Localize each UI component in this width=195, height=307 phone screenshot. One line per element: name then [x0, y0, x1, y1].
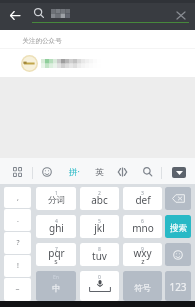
button[interactable]: 分词 — [36, 187, 76, 210]
staticText: z — [141, 257, 145, 266]
button[interactable]: Voice input — [80, 271, 119, 301]
button[interactable]: 符号 — [123, 271, 162, 301]
button[interactable] — [0, 49, 195, 77]
staticText: 英 — [95, 167, 104, 178]
staticText: ? — [16, 238, 20, 248]
staticText: 5 — [98, 218, 101, 225]
staticText: mno — [132, 221, 154, 235]
staticText: 拼· — [69, 166, 80, 178]
staticText: 0 — [98, 274, 101, 281]
staticText: 4 — [55, 218, 58, 225]
button[interactable]: 英 — [89, 160, 109, 184]
staticText: . — [17, 215, 19, 225]
button[interactable]: Keyboard layouts — [7, 160, 28, 184]
staticText: def — [135, 193, 151, 207]
staticText: 搜索 — [170, 223, 187, 234]
button[interactable]: ? — [4, 232, 31, 254]
button[interactable]: jkl — [80, 215, 119, 238]
staticText: pqr — [48, 246, 65, 260]
button[interactable]: mno — [123, 215, 162, 238]
staticText: abc — [91, 193, 108, 207]
staticText: 3 — [141, 190, 144, 197]
button[interactable]: 搜索 — [165, 215, 191, 238]
staticText: 符号 — [134, 283, 151, 294]
button[interactable]: ! — [4, 255, 31, 277]
button[interactable]: , — [4, 187, 31, 208]
button[interactable]: 中 — [36, 271, 76, 301]
button[interactable]: 拼· — [62, 160, 86, 184]
staticText: jkl — [94, 221, 105, 235]
staticText: ! — [17, 261, 19, 271]
staticText: 9 — [141, 246, 144, 253]
button[interactable]: Clear search — [172, 7, 189, 24]
staticText: En — [53, 274, 59, 281]
staticText: 1 — [55, 190, 58, 197]
staticText: tuv — [92, 249, 107, 263]
button[interactable]: Voice input — [112, 160, 132, 184]
button[interactable]: 123 — [165, 271, 191, 301]
staticText: wxy — [133, 246, 152, 260]
button[interactable]: Back — [4, 3, 26, 27]
button[interactable]: def — [123, 187, 162, 210]
staticText: 中 — [52, 283, 61, 294]
staticText: , — [17, 193, 19, 203]
button[interactable]: Search — [138, 160, 158, 184]
button[interactable]: pqr — [36, 243, 76, 266]
staticText: 6 — [141, 218, 144, 225]
staticText: 7 — [55, 246, 58, 253]
button[interactable]: . — [4, 209, 31, 231]
button[interactable]: tuv — [80, 243, 119, 266]
staticText: 2 — [98, 190, 101, 197]
button[interactable]: ghi — [36, 215, 76, 238]
staticText: 123 — [169, 280, 187, 294]
staticText: ghi — [49, 221, 64, 235]
button[interactable]: 关注的公众号 — [0, 30, 195, 48]
button[interactable]: Emoji — [36, 160, 57, 184]
button[interactable]: wxy — [123, 243, 162, 266]
staticText: 分词 — [48, 195, 65, 206]
staticText: s — [54, 257, 58, 266]
staticText: ~ — [15, 285, 20, 295]
button[interactable]: Backspace — [165, 187, 191, 210]
button[interactable]: Hide keyboard — [166, 160, 191, 184]
button[interactable]: abc — [80, 187, 119, 210]
button[interactable]: ~ — [4, 278, 31, 301]
staticText: 关注的公众号 — [22, 37, 62, 45]
button[interactable]: Emoji — [165, 243, 191, 266]
staticText: 8 — [98, 246, 101, 253]
